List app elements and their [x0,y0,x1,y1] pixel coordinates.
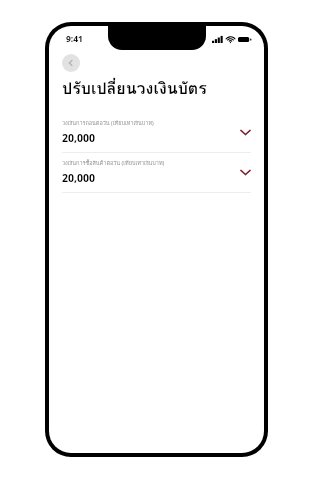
staticText: 20,000 [62,171,96,185]
staticText: ปรับเปลี่ยนวงเงินบัตร [62,76,207,101]
button[interactable]: วงเงินการซื้อสินค้าต่อวัน (เทียบเท่าเงิน… [49,153,264,192]
staticText: 20,000 [62,131,96,145]
staticText: 9:41 [66,33,83,45]
button[interactable]: Back [62,54,80,72]
button[interactable]: วงเงินการถอนต่อวัน (เทียบเท่าเงินบาท) [49,113,264,152]
staticText: วงเงินการถอนต่อวัน (เทียบเท่าเงินบาท) [62,119,154,128]
staticText: วงเงินการซื้อสินค้าต่อวัน (เทียบเท่าเงิน… [62,159,165,168]
